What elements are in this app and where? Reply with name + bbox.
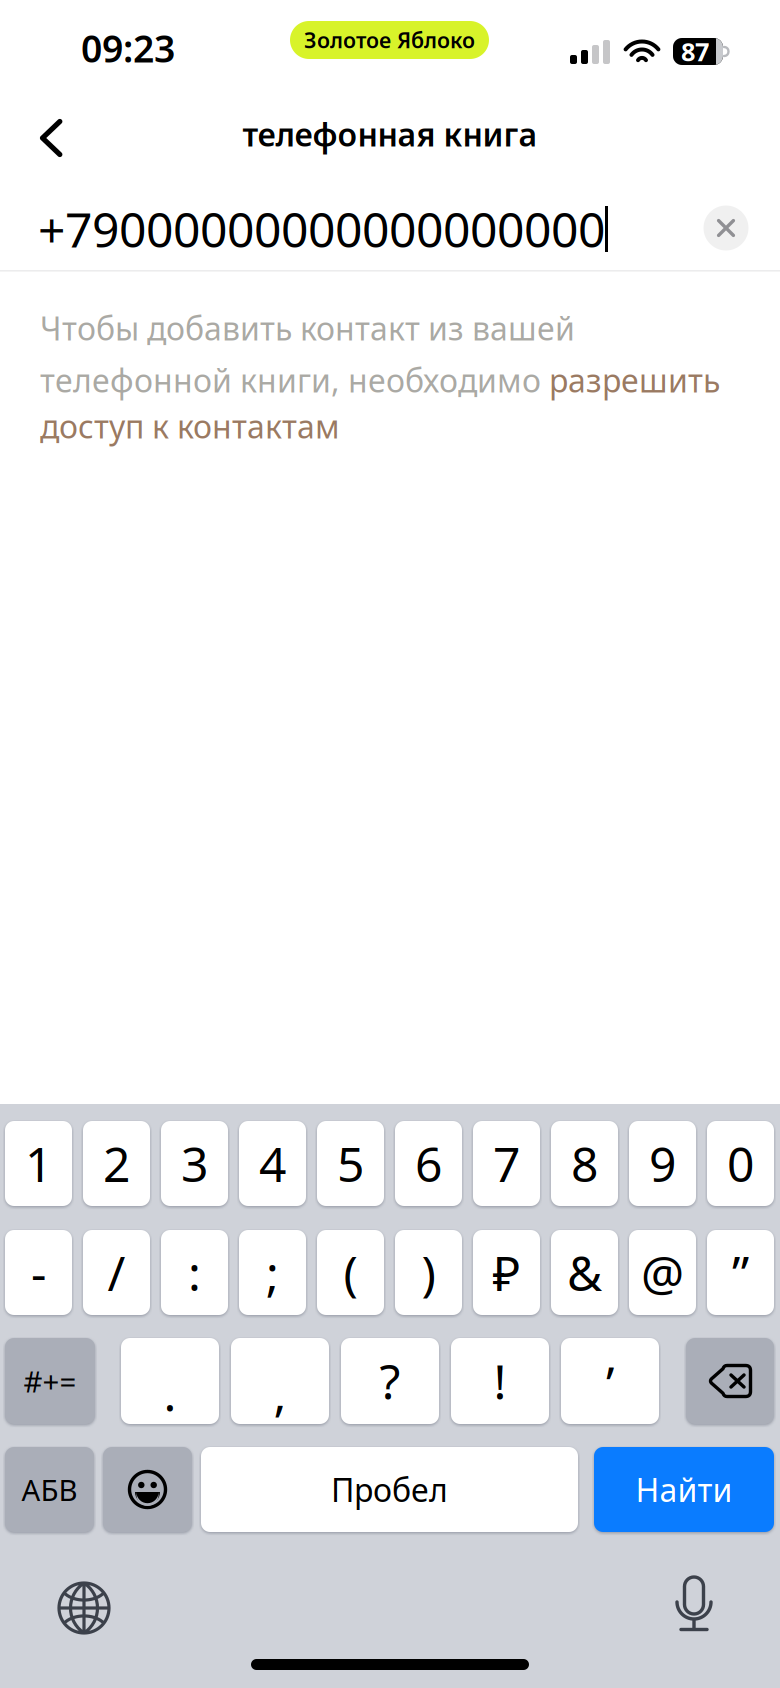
button[interactable]: Back — [13, 100, 89, 176]
button[interactable]: 2 — [83, 1121, 150, 1206]
staticText: 1 — [25, 1132, 52, 1195]
staticText: 4 — [259, 1132, 286, 1195]
staticText: +79000000000000000000 — [38, 197, 605, 261]
staticText: @ — [641, 1241, 684, 1304]
staticText: АБВ — [21, 1470, 77, 1509]
button[interactable]: Dictation — [659, 1571, 729, 1641]
staticText: телефонная книга — [242, 113, 537, 155]
staticText: 3 — [181, 1132, 208, 1195]
button[interactable]: Clear text — [694, 196, 758, 260]
button[interactable]: 3 — [161, 1121, 228, 1206]
staticText: 09:23 — [81, 23, 175, 73]
staticText: ₽ — [492, 1241, 520, 1304]
button[interactable]: ) — [395, 1230, 462, 1315]
staticText: 87 — [681, 35, 709, 68]
button[interactable]: #+= — [5, 1338, 95, 1424]
staticText: 8 — [571, 1132, 598, 1195]
button[interactable]: 1 — [5, 1121, 72, 1206]
staticText: 2 — [103, 1132, 130, 1195]
staticText: 9 — [649, 1132, 676, 1195]
staticText: , — [273, 1361, 286, 1425]
button[interactable]: 5 — [317, 1121, 384, 1206]
staticText: & — [567, 1241, 602, 1304]
staticText: : — [188, 1241, 201, 1304]
button[interactable]: ₽ — [473, 1230, 540, 1315]
button[interactable]: / — [83, 1230, 150, 1315]
button[interactable]: 0 — [707, 1121, 774, 1206]
staticText: ) — [421, 1241, 435, 1304]
button[interactable]: @ — [629, 1230, 696, 1315]
staticText: ” — [732, 1241, 749, 1304]
button[interactable]: 9 — [629, 1121, 696, 1206]
staticText: ( — [343, 1241, 357, 1304]
staticText: ? — [379, 1349, 400, 1413]
staticText: Золотое Яблоко — [304, 26, 475, 54]
button[interactable]: : — [161, 1230, 228, 1315]
staticText: ; — [266, 1241, 279, 1304]
staticText: ! — [493, 1349, 506, 1413]
button[interactable]: 6 — [395, 1121, 462, 1206]
button[interactable]: Найти — [594, 1447, 774, 1532]
staticText: телефонной книги, необходимо — [40, 359, 549, 401]
button[interactable]: ( — [317, 1230, 384, 1315]
button[interactable]: АБВ — [5, 1447, 94, 1532]
staticText: 6 — [415, 1132, 442, 1195]
button[interactable]: 7 — [473, 1121, 540, 1206]
staticText: / — [107, 1241, 125, 1304]
button[interactable]: 4 — [239, 1121, 306, 1206]
button[interactable]: - — [5, 1230, 72, 1315]
button[interactable]: Delete — [686, 1338, 774, 1424]
staticText: разрешить — [549, 359, 720, 401]
button[interactable]: ! — [451, 1338, 549, 1424]
button[interactable]: & — [551, 1230, 618, 1315]
staticText: 5 — [337, 1132, 364, 1195]
button[interactable]: , — [231, 1338, 329, 1424]
staticText: Найти — [635, 1468, 732, 1511]
button[interactable]: Next keyboard — [49, 1573, 119, 1643]
staticText: доступ к контактам — [40, 405, 340, 447]
staticText: #+= — [23, 1361, 76, 1400]
staticText: - — [31, 1241, 46, 1304]
staticText: . — [163, 1361, 176, 1425]
button[interactable]: Emoji — [103, 1447, 192, 1532]
button[interactable]: . — [121, 1338, 219, 1424]
button[interactable]: ; — [239, 1230, 306, 1315]
button[interactable]: ’ — [561, 1338, 659, 1424]
staticText: ’ — [606, 1351, 614, 1415]
staticText: Пробел — [331, 1468, 448, 1511]
staticText: Чтобы добавить контакт из вашей — [40, 307, 575, 349]
staticText: 7 — [493, 1132, 520, 1195]
button[interactable]: ” — [707, 1230, 774, 1315]
staticText: 0 — [727, 1132, 754, 1195]
button[interactable]: Пробел — [201, 1447, 578, 1532]
button[interactable]: ? — [341, 1338, 439, 1424]
button[interactable]: 8 — [551, 1121, 618, 1206]
